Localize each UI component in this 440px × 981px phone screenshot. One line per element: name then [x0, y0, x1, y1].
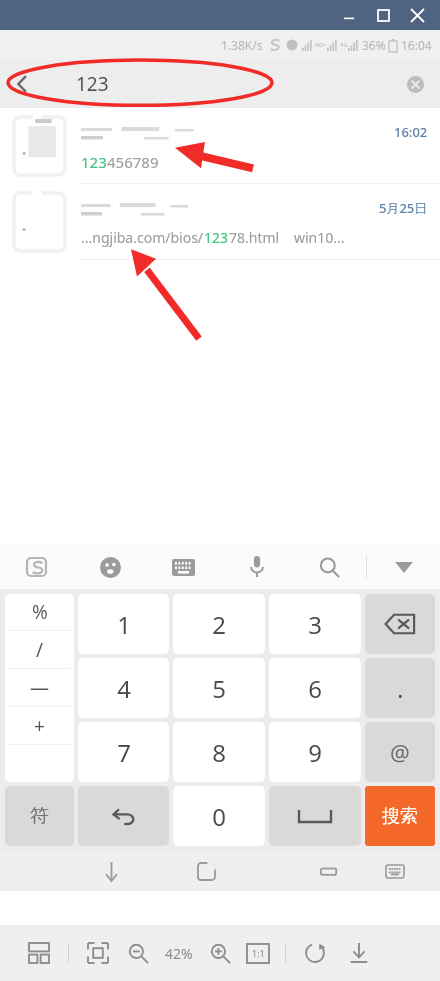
- staticText: +: [34, 713, 45, 739]
- staticText: 7: [117, 736, 131, 769]
- staticText: 4: [117, 672, 131, 705]
- staticText: 456789: [107, 152, 159, 172]
- staticText: 搜索: [382, 805, 418, 828]
- button[interactable]: 符: [5, 786, 74, 846]
- staticText: 2: [212, 608, 226, 641]
- button[interactable]: Undo: [78, 786, 169, 846]
- button[interactable]: Backspace: [365, 594, 435, 654]
- button[interactable]: 42%: [165, 944, 193, 963]
- button[interactable]: Clear: [390, 60, 440, 108]
- button[interactable]: Emoji: [74, 545, 147, 589]
- staticText: 42%: [165, 944, 193, 963]
- button[interactable]: Hide keyboard: [367, 545, 440, 589]
- button[interactable]: 6: [269, 658, 361, 718]
- staticText: 9: [308, 736, 322, 769]
- staticText: /: [36, 637, 44, 663]
- staticText: 3: [308, 608, 322, 641]
- button[interactable]: Rotate: [300, 938, 330, 968]
- button[interactable]: Home: [180, 851, 233, 891]
- button[interactable]: Back: [0, 60, 44, 108]
- button[interactable]: Close: [400, 0, 434, 30]
- staticText: 36%: [362, 37, 386, 53]
- staticText: @: [390, 737, 410, 767]
- staticText: 1:1: [252, 947, 265, 959]
- button[interactable]: 8: [173, 722, 265, 782]
- button[interactable]: Voice input: [220, 545, 293, 589]
- button[interactable]: 4: [78, 658, 169, 718]
- staticText: 123: [204, 228, 229, 247]
- button[interactable]: Keyboard layout: [147, 545, 220, 589]
- staticText: %: [32, 599, 48, 625]
- button[interactable]: Keyboard: [368, 851, 421, 891]
- button[interactable]: 9: [269, 722, 361, 782]
- staticText: 5: [212, 672, 226, 705]
- button[interactable]: 搜索: [365, 786, 435, 846]
- button[interactable]: Zoom out: [123, 938, 153, 968]
- button[interactable]: Fit screen: [83, 938, 113, 968]
- staticText: 123: [76, 71, 109, 97]
- staticText: 1: [117, 608, 131, 641]
- button[interactable]: 2: [173, 594, 265, 654]
- button[interactable]: Layouts: [24, 938, 54, 968]
- button[interactable]: Space: [269, 786, 361, 846]
- staticText: 8: [212, 736, 226, 769]
- staticText: 6: [308, 672, 322, 705]
- button[interactable]: %: [5, 594, 74, 630]
- staticText: 16:02: [394, 123, 428, 141]
- button[interactable]: Search: [293, 545, 366, 589]
- button[interactable]: 7: [78, 722, 169, 782]
- button[interactable]: 0: [173, 786, 265, 846]
- staticText: .: [397, 672, 404, 705]
- button[interactable]: Sogou input: [0, 545, 74, 589]
- button[interactable]: Back: [85, 851, 138, 891]
- button[interactable]: Zoom in: [205, 938, 235, 968]
- button[interactable]: Recent apps: [302, 851, 355, 891]
- button[interactable]: Download: [344, 938, 374, 968]
- button[interactable]: —: [5, 669, 74, 706]
- staticText: win10...: [294, 228, 345, 247]
- staticText: 4G: [340, 41, 348, 49]
- button[interactable]: +: [5, 707, 74, 744]
- staticText: 1.38K/s: [221, 37, 263, 53]
- button[interactable]: 5: [173, 658, 265, 718]
- staticText: 5月25日: [379, 199, 428, 217]
- staticText: 4G+: [315, 41, 327, 49]
- staticText: 符: [30, 804, 49, 828]
- staticText: 0: [212, 800, 226, 833]
- button[interactable]: /: [5, 631, 74, 668]
- button[interactable]: ...ngjiba.com/bios/: [0, 184, 440, 259]
- staticText: 16:04: [401, 37, 432, 53]
- staticText: ...ngjiba.com/bios/: [81, 228, 204, 247]
- button[interactable]: .: [365, 658, 435, 718]
- staticText: —: [30, 675, 50, 701]
- button[interactable]: Minimize: [332, 0, 366, 30]
- button[interactable]: @: [365, 722, 435, 782]
- staticText: 78.html: [229, 228, 280, 247]
- button[interactable]: 1: [78, 594, 169, 654]
- button[interactable]: 123: [0, 108, 440, 183]
- staticText: 123: [81, 152, 107, 172]
- button[interactable]: Actual size: [245, 940, 271, 966]
- button[interactable]: 3: [269, 594, 361, 654]
- button[interactable]: Maximize: [366, 0, 400, 30]
